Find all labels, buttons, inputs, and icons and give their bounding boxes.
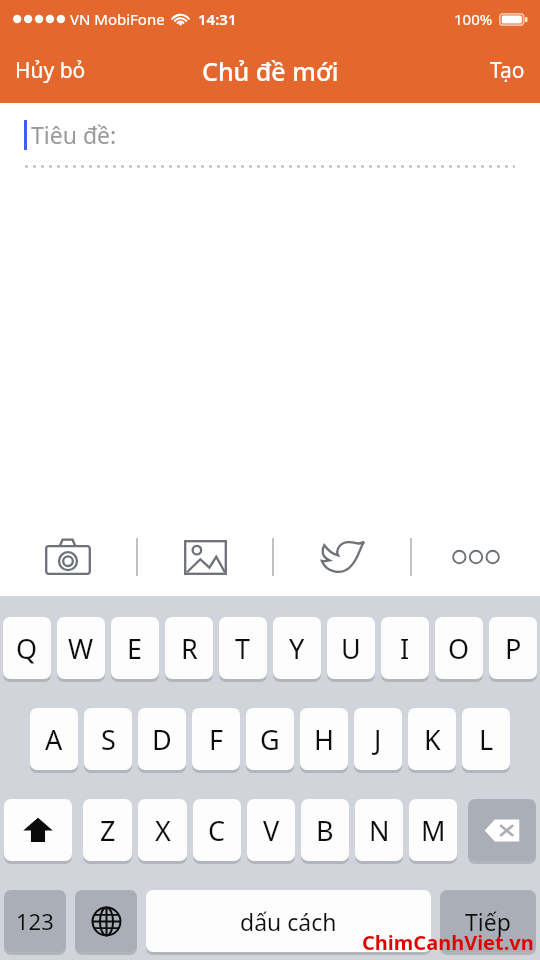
staticText: X: [155, 812, 171, 849]
button[interactable]: E: [111, 617, 159, 682]
staticText: M: [421, 812, 446, 849]
button[interactable]: [75, 890, 137, 955]
button[interactable]: G: [246, 708, 294, 773]
button[interactable]: V: [247, 799, 295, 864]
button[interactable]: F: [192, 708, 240, 773]
staticText: Q: [16, 630, 38, 667]
button[interactable]: U: [327, 617, 375, 682]
staticText: L: [479, 721, 494, 758]
staticText: J: [374, 721, 382, 758]
button[interactable]: H: [300, 708, 348, 773]
staticText: W: [68, 630, 94, 667]
button[interactable]: C: [193, 799, 241, 864]
button[interactable]: 123: [4, 890, 66, 955]
button[interactable]: dấu cách: [146, 890, 431, 955]
staticText: U: [341, 630, 361, 667]
other: Shift: [4, 799, 72, 864]
staticText: R: [181, 630, 198, 667]
button[interactable]: Photo library: [138, 518, 272, 596]
staticText: D: [152, 721, 172, 758]
button[interactable]: Q: [3, 617, 51, 682]
staticText: Z: [100, 812, 116, 849]
staticText: 100%: [454, 9, 493, 29]
other: Backspace: [468, 799, 536, 864]
staticText: 14:31: [198, 9, 237, 29]
button[interactable]: J: [354, 708, 402, 773]
staticText: B: [316, 812, 334, 849]
button[interactable]: D: [138, 708, 186, 773]
staticText: K: [424, 721, 441, 758]
staticText: E: [127, 630, 143, 667]
button[interactable]: [468, 799, 536, 864]
staticText: C: [208, 812, 226, 849]
staticText: P: [505, 630, 522, 667]
button[interactable]: More options: [412, 518, 540, 596]
staticText: I: [400, 630, 410, 667]
button[interactable]: Hủy bỏ: [4, 47, 97, 94]
staticText: Hủy bỏ: [15, 56, 86, 85]
button[interactable]: M: [409, 799, 457, 864]
button[interactable]: N: [355, 799, 403, 864]
button[interactable]: R: [165, 617, 213, 682]
staticText: G: [260, 721, 280, 758]
button[interactable]: Camera: [0, 518, 136, 596]
staticText: dấu cách: [240, 906, 337, 937]
button[interactable]: Tạo: [479, 47, 536, 94]
staticText: O: [448, 630, 470, 667]
other: Change keyboard language: [75, 890, 137, 955]
staticText: H: [314, 721, 335, 758]
staticText: 123: [16, 906, 54, 936]
staticText: ChimCanhViet.vn: [362, 929, 534, 956]
staticText: VN MobiFone: [70, 9, 165, 29]
staticText: Chủ đề mới: [202, 54, 339, 88]
staticText: Tạo: [490, 56, 525, 85]
button[interactable]: O: [435, 617, 483, 682]
staticText: Tiêu đề:: [31, 119, 117, 150]
button[interactable]: K: [408, 708, 456, 773]
staticText: S: [101, 721, 116, 758]
staticText: T: [235, 630, 251, 667]
button[interactable]: S: [84, 708, 132, 773]
button[interactable]: [4, 799, 72, 864]
button[interactable]: L: [462, 708, 510, 773]
button[interactable]: Z: [83, 799, 132, 864]
staticText: N: [369, 812, 390, 849]
button[interactable]: Twitter: [274, 518, 410, 596]
button[interactable]: A: [30, 708, 78, 773]
button[interactable]: P: [489, 617, 537, 682]
staticText: F: [209, 721, 224, 758]
button[interactable]: I: [381, 617, 429, 682]
button[interactable]: B: [301, 799, 349, 864]
staticText: A: [45, 721, 63, 758]
button[interactable]: Tiếp: [440, 890, 536, 955]
staticText: Tiếp: [465, 906, 511, 937]
button[interactable]: Tiêu đề:: [0, 103, 540, 165]
button[interactable]: T: [219, 617, 267, 682]
staticText: V: [263, 812, 280, 849]
button[interactable]: X: [138, 799, 187, 864]
staticText: Y: [289, 630, 305, 667]
button[interactable]: Y: [273, 617, 321, 682]
button[interactable]: W: [57, 617, 105, 682]
